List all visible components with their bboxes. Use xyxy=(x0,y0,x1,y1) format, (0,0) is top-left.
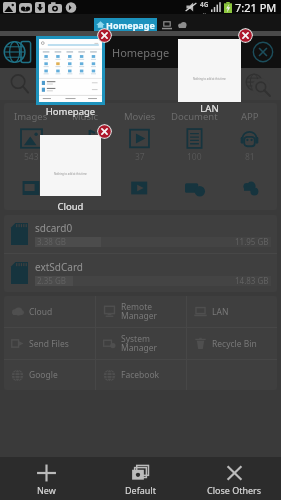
staticText: 2.35 GB xyxy=(37,275,66,286)
button[interactable] xyxy=(36,36,105,105)
button[interactable] xyxy=(222,177,277,199)
button[interactable]: Nothing to add at this time xyxy=(40,135,101,196)
button[interactable]: Facebook xyxy=(96,360,186,390)
staticText: Document xyxy=(171,110,218,123)
staticText: Remote Manager xyxy=(121,301,158,322)
staticText: 4G xyxy=(200,0,209,9)
staticText: LAN xyxy=(212,306,229,318)
button[interactable] xyxy=(4,177,58,199)
staticText: Google xyxy=(29,369,58,381)
button[interactable]: sdcard0 xyxy=(4,215,277,253)
button[interactable]: Close xyxy=(252,41,274,63)
staticText: .. xyxy=(203,9,206,14)
button[interactable] xyxy=(112,177,167,199)
staticText: Send Files xyxy=(29,338,69,350)
staticText: Recycle Bin xyxy=(212,338,257,350)
button[interactable]: Default xyxy=(93,457,187,500)
staticText: 3.38 GB xyxy=(37,236,66,247)
staticText: 100 xyxy=(187,151,202,160)
staticText: Nothing to add at this time xyxy=(54,172,87,176)
staticText: Close Others xyxy=(207,484,262,496)
button[interactable]: 21 xyxy=(58,128,112,160)
button[interactable]: Homepage xyxy=(94,18,157,31)
button[interactable]: Close LAN xyxy=(238,28,253,43)
staticText: extSdCard xyxy=(35,260,83,274)
staticText: 81 xyxy=(245,151,255,160)
staticText: Homepage xyxy=(30,105,111,118)
staticText: 543 xyxy=(24,151,39,160)
button[interactable]: ES File Explorer xyxy=(5,39,37,65)
button[interactable] xyxy=(58,177,112,199)
button[interactable]: Remote Manager xyxy=(96,296,186,327)
button[interactable]: Send Files xyxy=(4,328,95,359)
staticText: Default xyxy=(125,484,156,496)
button[interactable]: Cloud xyxy=(4,296,95,327)
button[interactable]: 543 xyxy=(4,128,58,160)
button[interactable]: Close Others xyxy=(187,457,281,500)
button[interactable]: Search xyxy=(8,72,32,96)
staticText: Homepage xyxy=(112,45,170,60)
staticText: 37 xyxy=(135,151,145,160)
staticText: 14.83 GB xyxy=(235,275,269,286)
button[interactable]: Cloud tab xyxy=(177,19,188,30)
staticText: Music xyxy=(72,110,99,123)
staticText: Images xyxy=(14,110,48,123)
button[interactable]: LAN tab xyxy=(162,20,172,30)
button[interactable]: 81 xyxy=(222,128,277,160)
staticText: Facebook xyxy=(121,369,160,381)
button[interactable]: Net search xyxy=(245,72,269,96)
button[interactable]: 37 xyxy=(112,128,167,160)
button[interactable]: Close Cloud xyxy=(97,124,112,139)
button[interactable]: extSdCard xyxy=(4,254,277,292)
staticText: Cloud xyxy=(29,306,53,318)
staticText: Movies xyxy=(124,110,156,123)
staticText: LAN xyxy=(178,102,241,115)
staticText: sdcard0 xyxy=(35,221,73,235)
button[interactable]: LAN xyxy=(187,296,277,327)
staticText: 11.95 GB xyxy=(235,236,269,247)
staticText: Homepage xyxy=(106,19,155,31)
button[interactable]: 100 xyxy=(167,128,222,160)
button[interactable]: Close Homepage xyxy=(97,28,112,43)
staticText: Nothing to add at this time xyxy=(193,77,226,81)
button[interactable]: New xyxy=(0,457,93,500)
staticText: New xyxy=(37,484,56,496)
button[interactable]: Recycle Bin xyxy=(187,328,277,359)
button[interactable]: Nothing to add at this time xyxy=(178,39,241,102)
staticText: 7:21 PM xyxy=(235,0,277,14)
staticText: System Manager xyxy=(121,333,158,354)
staticText: APP xyxy=(241,110,259,123)
button[interactable] xyxy=(167,177,222,199)
button[interactable]: Google xyxy=(4,360,95,390)
staticText: Cloud xyxy=(40,200,101,213)
button[interactable]: System Manager xyxy=(96,328,186,359)
